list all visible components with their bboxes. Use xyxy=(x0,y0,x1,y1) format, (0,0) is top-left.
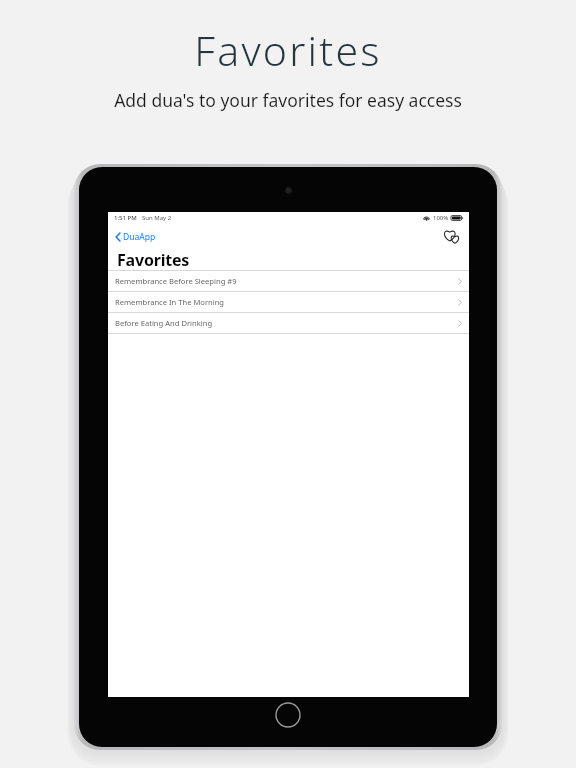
staticText: Favorites xyxy=(194,22,382,78)
staticText: Before Eating And Drinking xyxy=(115,318,213,328)
staticText: 1:51 PM xyxy=(114,214,137,222)
button[interactable]: Remembrance Before Sleeping #9 xyxy=(108,271,469,291)
staticText: Sun May 2 xyxy=(142,214,172,222)
staticText: DuaApp xyxy=(123,231,156,243)
button[interactable]: Favorites xyxy=(441,227,462,246)
other: Home xyxy=(275,702,301,728)
button[interactable]: Before Eating And Drinking xyxy=(108,313,469,333)
staticText: Favorites xyxy=(117,249,190,270)
button[interactable]: DuaApp xyxy=(113,228,158,246)
button[interactable]: Remembrance In The Morning xyxy=(108,292,469,312)
staticText: 100% xyxy=(433,214,449,222)
staticText: Add dua's to your favorites for easy acc… xyxy=(114,88,462,112)
staticText: Remembrance Before Sleeping #9 xyxy=(115,276,237,286)
staticText: Remembrance In The Morning xyxy=(115,297,225,307)
